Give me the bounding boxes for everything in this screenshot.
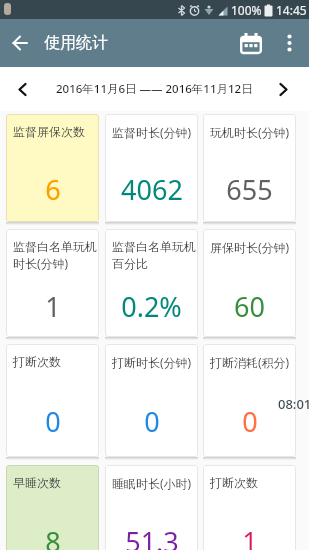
staticText: 0.2% <box>121 288 182 325</box>
staticText: 屏保时长(分钟) <box>210 239 290 255</box>
button[interactable]: 玩机时长(分钟) <box>203 114 296 222</box>
staticText: 打断消耗(积分) <box>210 354 290 370</box>
staticText: 打断次数 <box>13 354 61 369</box>
staticText: 14:45 <box>276 2 307 18</box>
staticText: 0 <box>144 403 160 440</box>
button[interactable]: 监督时长(分钟) <box>105 114 198 222</box>
button[interactable] <box>9 32 31 54</box>
button[interactable]: 睡眠时长(小时) <box>105 465 198 550</box>
staticText: 早睡次数 <box>13 475 61 490</box>
staticText: 100% <box>231 2 262 18</box>
button[interactable]: 打断消耗(积分) <box>203 344 296 457</box>
button[interactable]: 监督白名单玩机 时长(分钟) <box>6 229 99 337</box>
staticText: 6 <box>45 171 61 208</box>
button[interactable] <box>237 29 265 57</box>
staticText: 4062 <box>121 171 183 208</box>
button[interactable] <box>269 75 297 103</box>
staticText: 51.3 <box>125 523 179 550</box>
staticText: 1 <box>242 523 258 550</box>
button[interactable]: 监督屏保次数 <box>6 114 99 222</box>
button[interactable]: 打断次数 <box>6 344 99 457</box>
staticText: 监督白名单玩机 时长(分钟) <box>13 239 97 272</box>
staticText: 监督时长(分钟) <box>112 124 192 140</box>
button[interactable]: 打断时长(分钟) <box>105 344 198 457</box>
staticText: 使用统计 <box>44 33 108 53</box>
staticText: 监督屏保次数 <box>13 124 85 139</box>
staticText: 睡眠时长(小时) <box>112 475 192 491</box>
staticText: 玩机时长(分钟) <box>210 124 290 140</box>
staticText: 0 <box>242 403 258 440</box>
staticText: 655 <box>226 171 273 208</box>
staticText: 监督白名单玩机 百分比 <box>112 239 196 271</box>
staticText: 0 <box>45 403 61 440</box>
button[interactable]: 打断次数 <box>203 465 296 550</box>
staticText: 打断次数 <box>210 475 258 490</box>
staticText: 60 <box>234 288 265 325</box>
button[interactable] <box>8 75 36 103</box>
button[interactable]: 2016年11月6日 —— 2016年11月12日 <box>56 81 253 97</box>
staticText: 08:01 <box>278 395 309 413</box>
staticText: 打断时长(分钟) <box>112 354 192 370</box>
staticText: 1 <box>45 288 61 325</box>
staticText: 8 <box>45 523 61 550</box>
button[interactable]: 早睡次数 <box>6 465 99 550</box>
button[interactable] <box>277 31 301 55</box>
button[interactable]: 屏保时长(分钟) <box>203 229 296 337</box>
button[interactable]: 监督白名单玩机 百分比 <box>105 229 198 337</box>
